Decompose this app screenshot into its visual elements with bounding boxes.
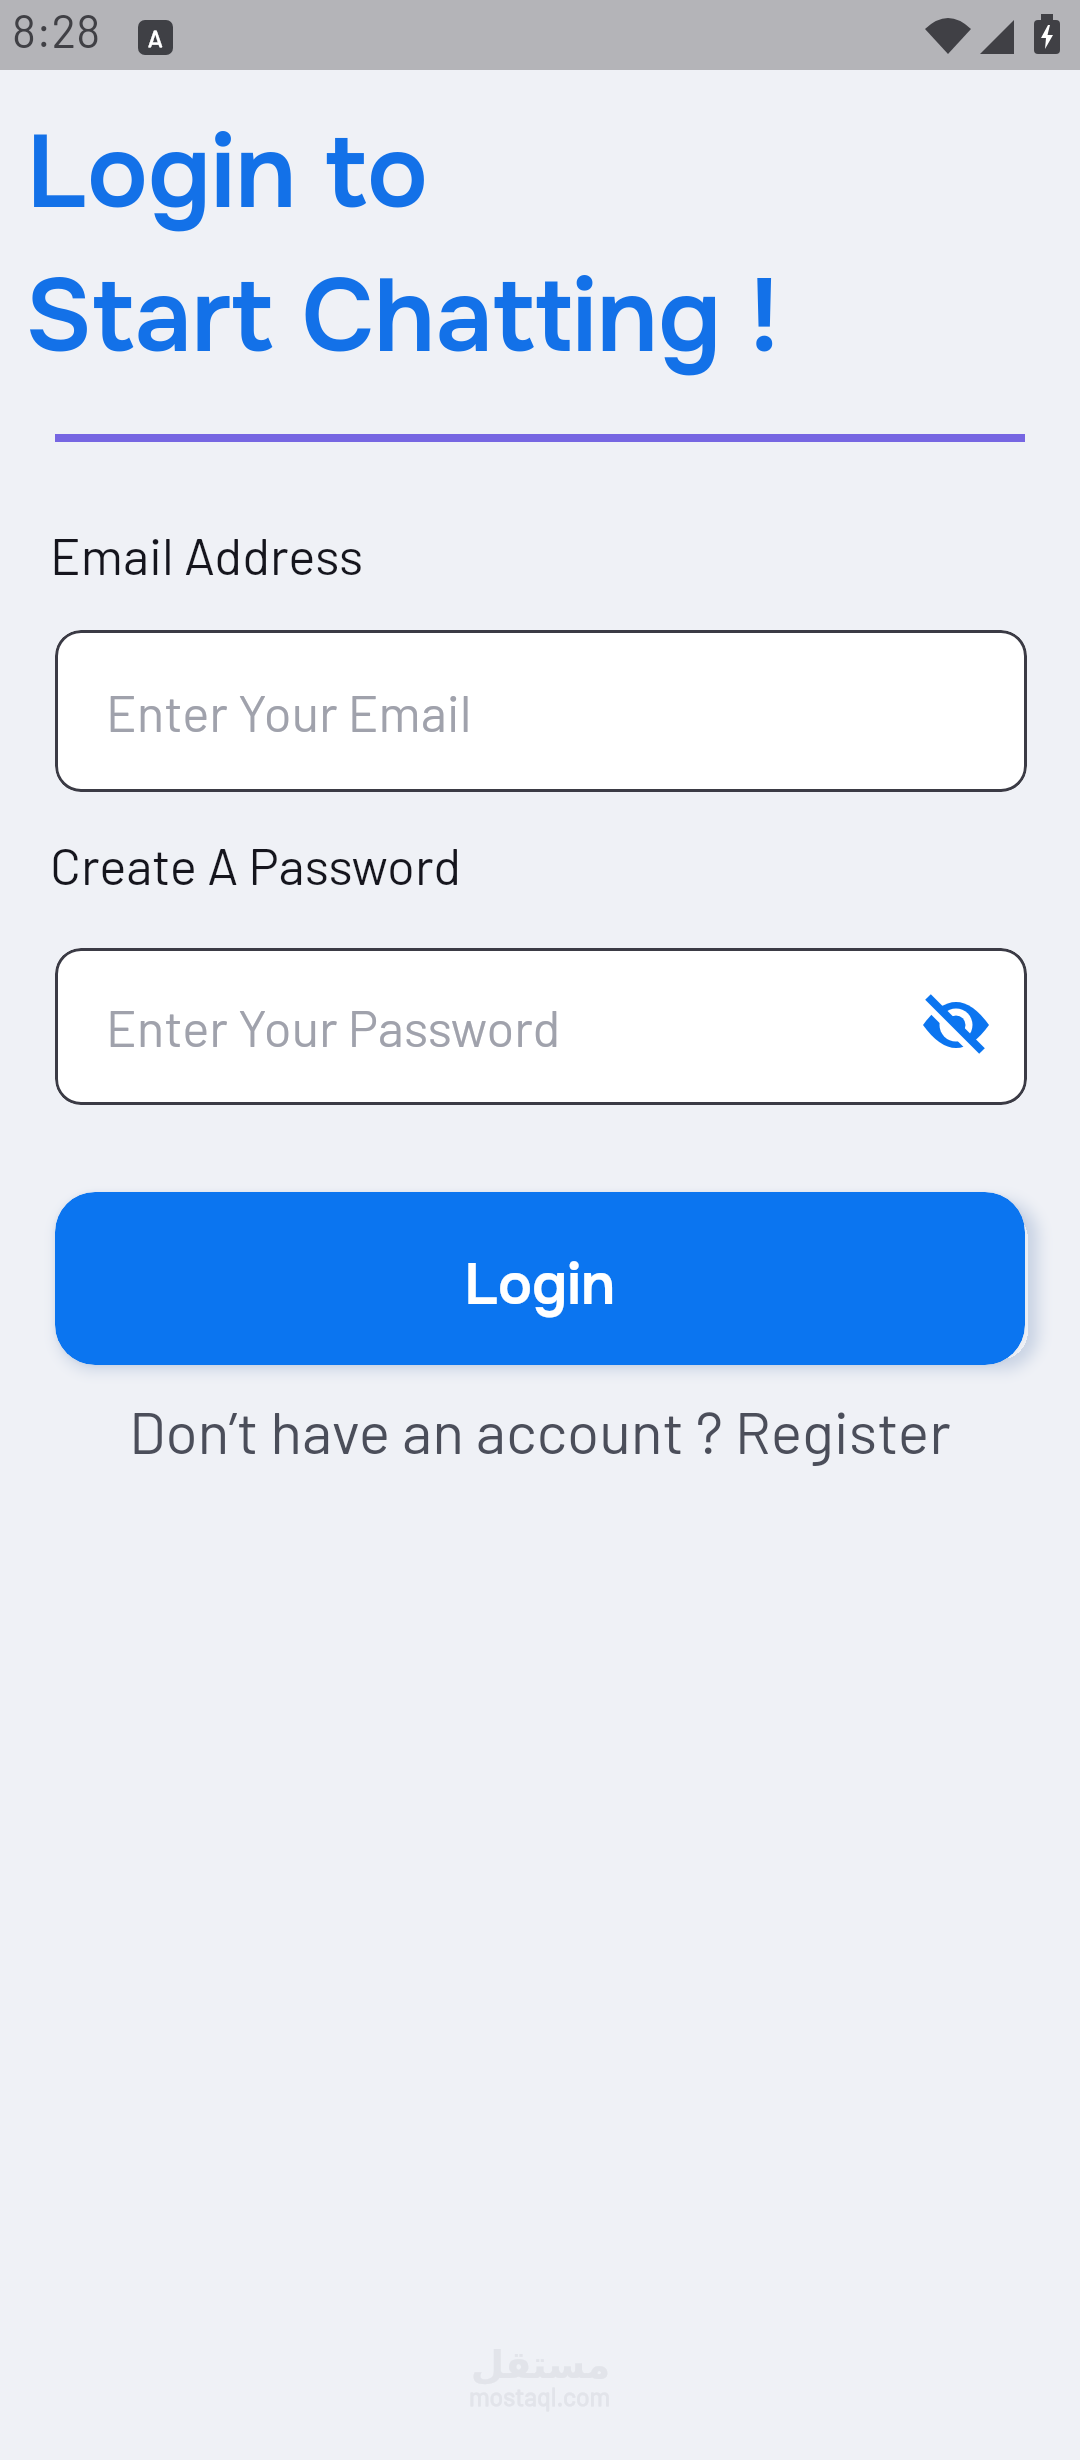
button[interactable]: Enter Your Email [55,630,1027,792]
staticText: Create A Password [50,834,462,895]
button[interactable]: Enter Your Password [55,948,1027,1105]
button[interactable]: Don’t have an account ? Register [0,1395,1080,1466]
staticText: mostaql.com [469,2381,611,2411]
button[interactable] [923,998,989,1056]
staticText: Don’t have an account ? Register [129,1395,951,1466]
staticText: Start Chatting ! [25,252,780,382]
staticText: Login [464,1249,616,1322]
staticText: Enter Your Password [106,996,561,1057]
button[interactable]: Login [55,1192,1025,1365]
staticText: A [148,23,163,52]
staticText: مستقل [471,2343,610,2387]
staticText: Email Address [50,524,364,585]
staticText: 8:28 [12,2,101,57]
staticText: Enter Your Email [106,681,472,742]
staticText: Login to [26,108,428,238]
